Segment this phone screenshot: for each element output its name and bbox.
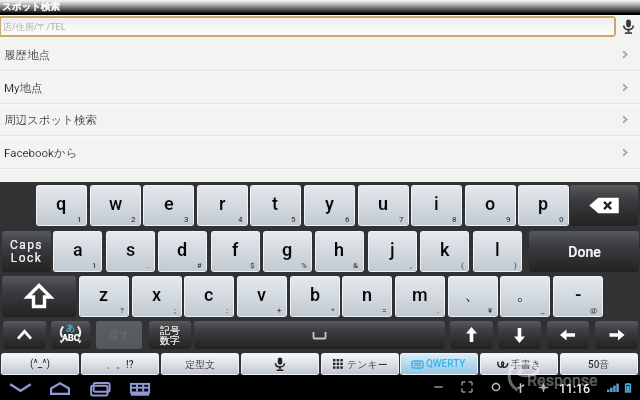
button[interactable]: t — [251, 186, 300, 225]
button[interactable]: 50音 — [561, 354, 637, 374]
staticText: c — [204, 284, 214, 305]
staticText: . — [147, 261, 150, 270]
button[interactable]: j — [369, 232, 416, 271]
staticText: j — [390, 239, 395, 260]
button[interactable]: 履歴地点 — [0, 38, 640, 71]
button[interactable]: 記号 数字 — [149, 321, 191, 349]
button[interactable]: Keyboard settings — [124, 375, 156, 400]
staticText: : — [226, 306, 229, 315]
button[interactable]: Down — [498, 321, 541, 349]
button[interactable]: 店/住所/〒/TEL — [1, 18, 614, 35]
staticText: テンキー — [347, 358, 388, 371]
staticText: @ — [590, 306, 598, 315]
button[interactable]: f — [212, 232, 259, 271]
button[interactable]: v — [238, 277, 286, 316]
staticText: 4 — [238, 215, 243, 224]
button[interactable]: 手書き — [481, 354, 557, 374]
button[interactable]: Shift — [2, 276, 76, 317]
staticText: e — [164, 193, 174, 214]
staticText: 7 — [399, 215, 404, 224]
button[interactable]: c — [185, 277, 233, 316]
button[interactable]: p — [519, 186, 568, 225]
button[interactable]: 定型文 — [162, 354, 238, 374]
button[interactable]: n — [343, 277, 391, 316]
button[interactable]: Up — [450, 321, 493, 349]
button[interactable]: Switch input mode — [51, 321, 90, 349]
button[interactable]: Done — [529, 231, 639, 272]
button[interactable]: d — [159, 232, 206, 271]
staticText: スポット検索 — [2, 1, 60, 13]
button[interactable]: r — [198, 186, 247, 225]
button[interactable]: k — [421, 232, 468, 271]
button[interactable]: l — [474, 232, 521, 271]
staticText: My地点 — [4, 81, 43, 95]
button[interactable]: Left — [547, 321, 589, 349]
button[interactable]: テンキー — [322, 354, 398, 374]
button[interactable]: a — [54, 232, 101, 271]
staticText: Caps Lock — [10, 238, 43, 265]
button[interactable]: 。 — [501, 277, 549, 316]
staticText: 1 — [92, 261, 97, 270]
button[interactable]: Hide keyboard — [3, 375, 38, 400]
button[interactable]: e — [144, 186, 193, 225]
button[interactable]: My地点 — [0, 71, 640, 104]
staticText: k — [440, 239, 450, 260]
staticText: = — [382, 306, 387, 315]
staticText: $ — [250, 261, 255, 270]
button[interactable]: 戻す — [96, 321, 142, 349]
button[interactable]: Recent apps — [84, 375, 116, 400]
button[interactable]: QWERTY — [401, 354, 477, 374]
staticText: 記号 数字 — [160, 324, 180, 347]
staticText: 50音 — [588, 358, 610, 371]
button[interactable]: m — [396, 277, 444, 316]
button[interactable]: g — [264, 232, 311, 271]
button[interactable]: o — [466, 186, 515, 225]
staticText: 、。!? — [106, 358, 134, 371]
staticText: s — [126, 239, 136, 260]
staticText: w — [109, 193, 123, 214]
staticText: g — [282, 239, 293, 260]
button[interactable]: Caps Lock — [2, 231, 51, 272]
button[interactable]: Voice input — [242, 354, 318, 374]
button[interactable]: w — [91, 186, 140, 225]
button[interactable]: Space — [194, 321, 445, 349]
staticText: + — [277, 306, 282, 315]
staticText: z — [99, 284, 109, 305]
button[interactable]: (^_^) — [2, 354, 78, 374]
button[interactable]: Home — [44, 375, 76, 400]
button[interactable]: - — [554, 277, 602, 316]
button[interactable]: s — [107, 232, 154, 271]
staticText: r — [219, 193, 226, 214]
staticText: 、 — [464, 283, 482, 306]
button[interactable]: Right — [595, 321, 638, 349]
staticText: , — [410, 261, 412, 270]
staticText: ? — [120, 306, 124, 315]
button[interactable]: Hide keyboard — [3, 321, 46, 349]
button[interactable]: z — [80, 277, 128, 316]
staticText: b — [310, 284, 321, 305]
button[interactable]: q — [37, 186, 86, 225]
button[interactable]: 、 — [449, 277, 497, 316]
staticText: & — [353, 261, 359, 270]
button[interactable]: u — [359, 186, 408, 225]
staticText: 履歴地点 — [4, 48, 50, 62]
staticText: ) — [514, 261, 517, 270]
button[interactable]: Voice search — [616, 15, 640, 38]
staticText: l — [495, 239, 500, 260]
button[interactable]: Backspace — [570, 185, 638, 226]
button[interactable]: Facebookから — [0, 136, 640, 169]
staticText: # — [197, 261, 202, 270]
button[interactable]: x — [133, 277, 181, 316]
staticText: ¥ — [488, 306, 493, 315]
staticText: 9 — [506, 215, 511, 224]
staticText: 手書き — [511, 358, 542, 371]
button[interactable]: 周辺スポット検索 — [0, 103, 640, 136]
button[interactable]: 、。!? — [82, 354, 158, 374]
button[interactable]: i — [412, 186, 461, 225]
staticText: ( — [461, 261, 464, 270]
button[interactable]: y — [305, 186, 354, 225]
staticText: u — [378, 193, 389, 214]
button[interactable]: b — [291, 277, 339, 316]
button[interactable]: h — [316, 232, 363, 271]
staticText: 11:16 — [559, 381, 591, 396]
